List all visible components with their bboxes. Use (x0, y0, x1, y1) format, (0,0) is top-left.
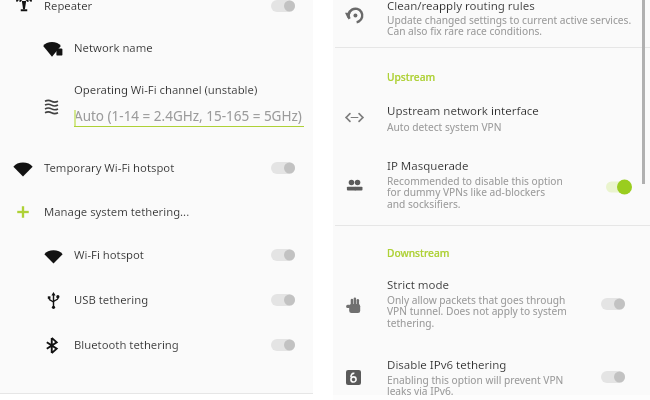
button[interactable]: Toggle (601, 370, 625, 384)
staticText: Update changed settings to current activ… (387, 13, 632, 38)
staticText: Clean/reapply routing rules (387, 0, 535, 14)
staticText: Operating Wi-Fi channel (unstable) (74, 82, 258, 97)
staticText: Auto detect system VPN (387, 120, 502, 134)
staticText: Upstream (387, 70, 436, 84)
button[interactable]: Temporary Wi-Fi hotspot (44, 160, 175, 175)
staticText: Bluetooth tethering (74, 337, 179, 352)
button[interactable]: Auto (1-14 = 2.4GHz, 15-165 = 5GHz) (74, 107, 302, 125)
button[interactable]: Strict mode (387, 277, 450, 293)
staticText: IP Masquerade (387, 158, 469, 174)
staticText: Repeater (44, 0, 93, 13)
button[interactable]: Toggle (601, 297, 625, 311)
button[interactable]: Clean/reapply routing rules (387, 0, 535, 14)
button[interactable]: Toggle (271, 248, 295, 262)
staticText: Network name (74, 40, 153, 55)
staticText: Wi-Fi hotspot (74, 247, 144, 262)
staticText: Downstream (387, 246, 450, 260)
button[interactable]: Disable IPv6 tethering (387, 357, 507, 373)
staticText: Upstream network interface (387, 103, 539, 119)
button[interactable]: Toggle (271, 0, 295, 13)
button[interactable]: Toggle (271, 293, 295, 307)
staticText: Disable IPv6 tethering (387, 357, 507, 373)
button[interactable]: USB tethering (74, 292, 149, 307)
staticText: Only allow packets that goes through VPN… (387, 293, 567, 330)
button[interactable]: IP Masquerade (387, 158, 469, 174)
staticText: Strict mode (387, 277, 450, 293)
button[interactable]: Wi-Fi hotspot (74, 247, 144, 262)
staticText: Enabling this option will prevent VPN le… (387, 373, 564, 398)
button[interactable]: Repeater (44, 0, 93, 13)
staticText: Auto (1-14 = 2.4GHz, 15-165 = 5GHz) (74, 107, 302, 125)
button[interactable]: Bluetooth tethering (74, 337, 179, 352)
staticText: Recommended to disable this option for d… (387, 174, 563, 211)
button[interactable]: Toggle (271, 161, 295, 175)
button[interactable]: Toggle (606, 179, 632, 195)
staticText: Manage system tethering... (44, 204, 190, 219)
staticText: USB tethering (74, 292, 149, 307)
button[interactable]: Toggle (271, 338, 295, 352)
button[interactable]: Network name (74, 40, 153, 55)
button[interactable]: Operating Wi-Fi channel (unstable) (74, 82, 258, 97)
button[interactable]: Upstream network interface (387, 103, 539, 119)
staticText: Temporary Wi-Fi hotspot (44, 160, 175, 175)
button[interactable]: Manage system tethering... (44, 204, 190, 219)
